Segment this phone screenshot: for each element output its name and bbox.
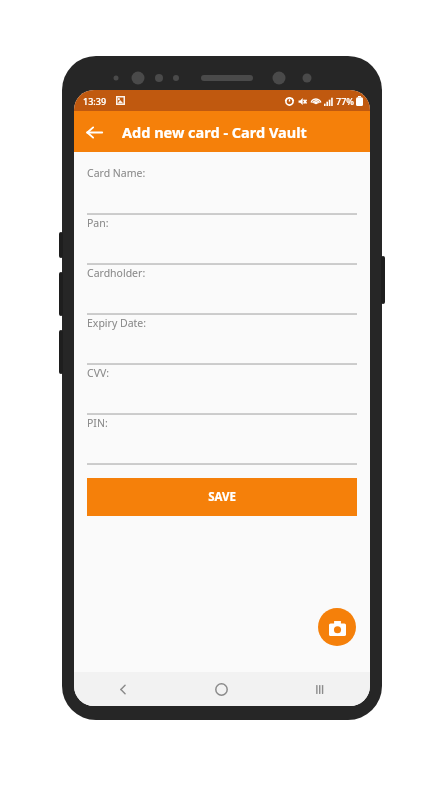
button[interactable]: Recent apps: [271, 672, 370, 706]
button[interactable]: Pan:: [87, 216, 357, 266]
staticText: 77%: [336, 95, 354, 107]
button[interactable]: Home: [172, 672, 271, 706]
button[interactable]: Back: [74, 112, 114, 152]
staticText: SAVE: [208, 489, 236, 505]
staticText: Expiry Date:: [87, 316, 147, 330]
staticText: CVV:: [87, 366, 110, 380]
staticText: Pan:: [87, 216, 109, 230]
staticText: Cardholder:: [87, 266, 146, 280]
staticText: PIN:: [87, 416, 108, 430]
staticText: 13:39: [83, 95, 107, 107]
button[interactable]: Back: [74, 672, 172, 706]
button[interactable]: Expiry Date:: [87, 316, 357, 366]
staticText: Add new card - Card Vault: [122, 122, 307, 142]
button[interactable]: PIN:: [87, 416, 357, 466]
button[interactable]: Cardholder:: [87, 266, 357, 316]
button[interactable]: Card Name:: [87, 166, 357, 216]
staticText: Card Name:: [87, 166, 146, 180]
button[interactable]: SAVE: [87, 478, 357, 516]
button[interactable]: Take photo of card: [318, 608, 356, 646]
button[interactable]: CVV:: [87, 366, 357, 416]
